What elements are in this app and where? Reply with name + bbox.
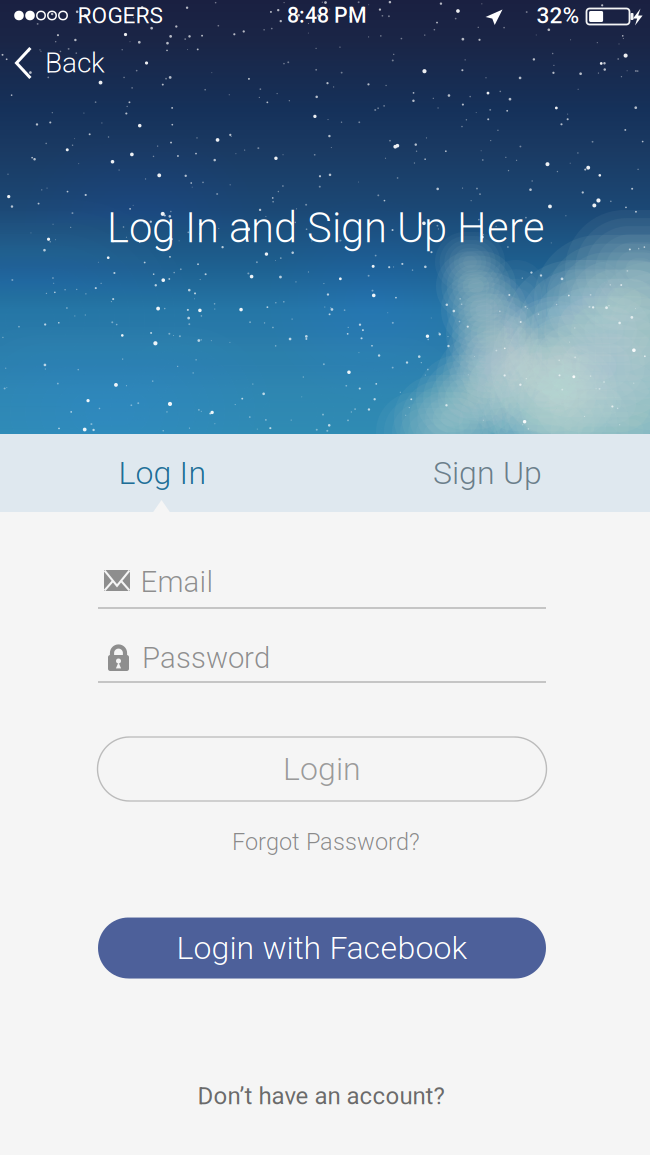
staticText: Don’t have an account?: [197, 1082, 444, 1110]
staticText: Log In and Sign Up Here: [107, 204, 545, 252]
button[interactable]: Login: [97, 737, 546, 801]
staticText: 8:48 PM: [287, 3, 367, 28]
staticText: Login with Facebook: [176, 929, 467, 967]
button[interactable]: Log In: [0, 434, 325, 512]
staticText: Back: [45, 47, 105, 79]
staticText: Email: [140, 565, 213, 599]
button[interactable]: Sign Up: [325, 434, 650, 512]
staticText: ROGERS: [77, 2, 162, 29]
staticText: Forgot Password?: [232, 828, 420, 856]
staticText: 32%: [536, 2, 579, 29]
staticText: Login: [283, 750, 361, 788]
button[interactable]: Back: [1, 32, 125, 93]
button[interactable]: Forgot Password?: [220, 819, 432, 865]
staticText: Sign Up: [433, 454, 542, 492]
staticText: Password: [142, 641, 270, 675]
button[interactable]: Don’t have an account?: [185, 1073, 456, 1119]
staticText: Log In: [118, 454, 206, 492]
button[interactable]: Login with Facebook: [98, 917, 546, 978]
